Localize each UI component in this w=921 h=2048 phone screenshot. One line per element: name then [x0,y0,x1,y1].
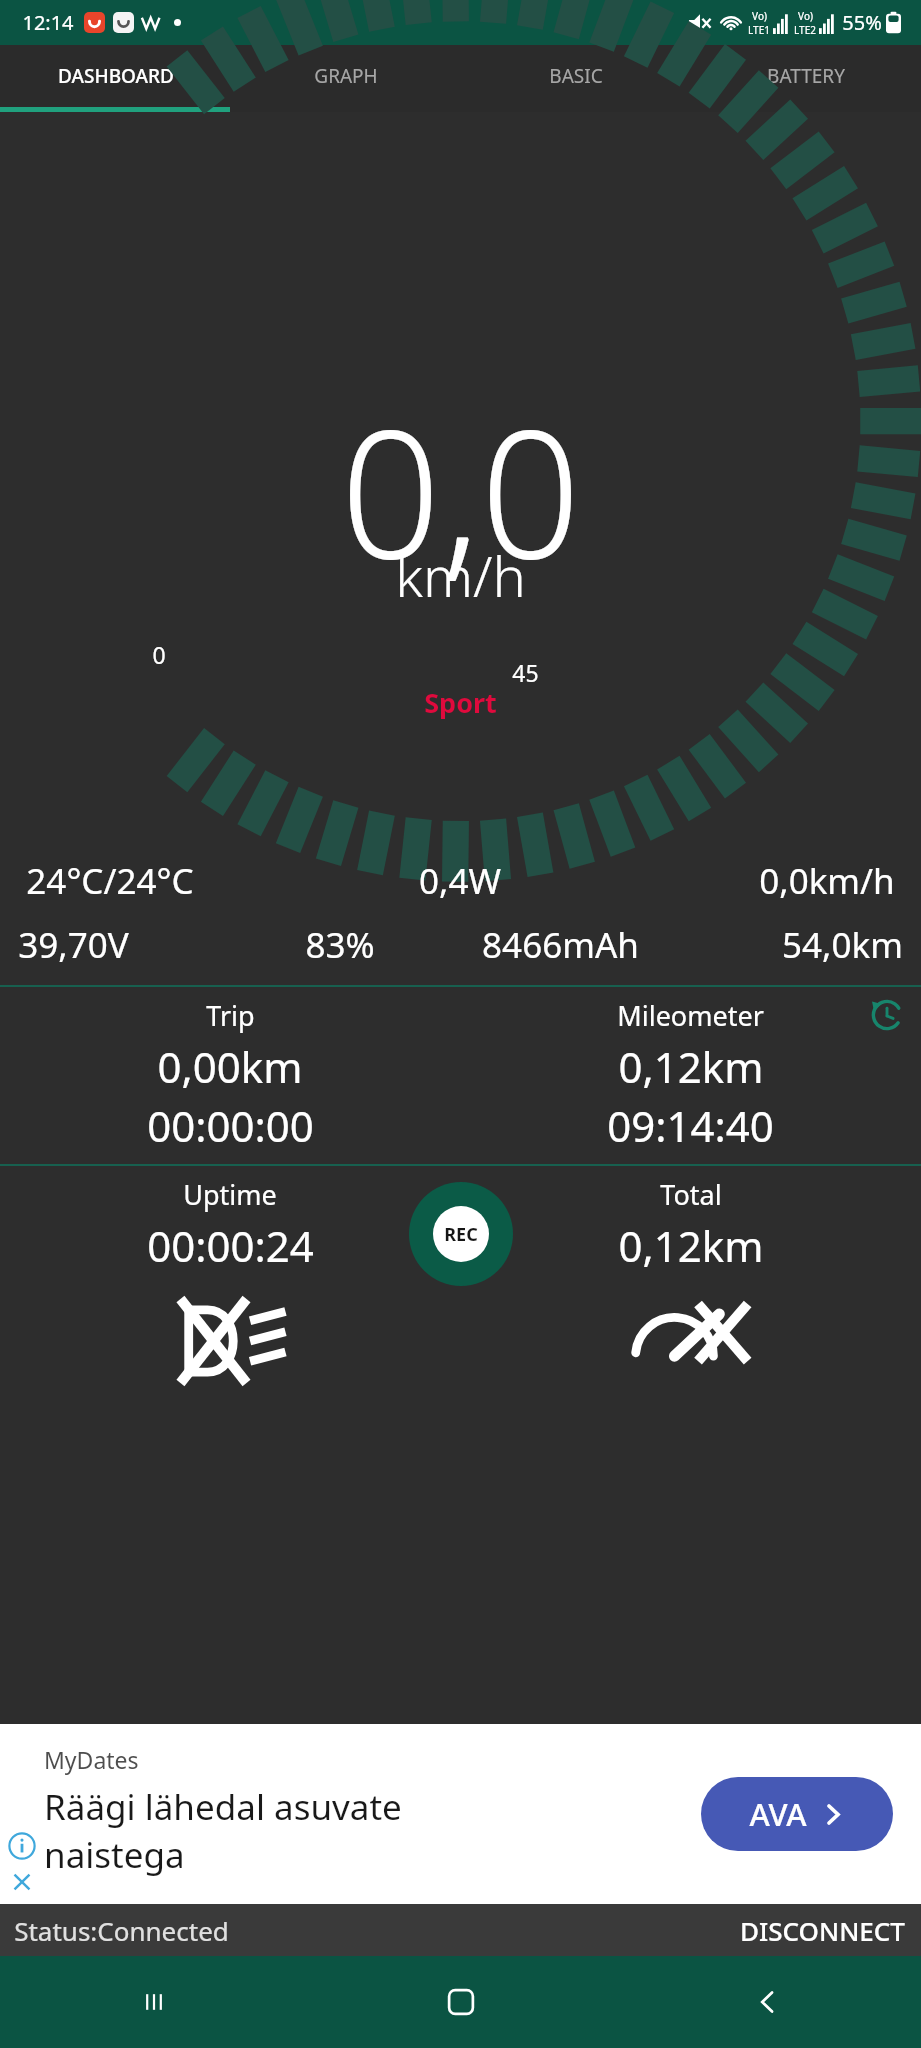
staticText: Status:Connected [14,1913,229,1948]
button[interactable]: Close ad [6,1866,38,1898]
staticText: BASIC [549,63,603,89]
staticText: 00:00:00 [147,1097,314,1154]
staticText: km/h [395,537,526,613]
staticText: Vo) [798,9,813,23]
staticText: 55% [842,9,882,36]
button[interactable]: DISCONNECT [724,1904,921,1956]
button[interactable]: Speed limit off [460,1282,921,1400]
staticText: LTE2 [794,23,816,37]
staticText: AVA [749,1793,807,1835]
staticText: 8466mAh [482,921,639,969]
staticText: 0,00km [157,1038,303,1095]
staticText: Mileometer [617,997,764,1034]
staticText: 39,70V [18,921,129,969]
button[interactable]: Record [409,1182,513,1286]
staticText: Vo) [752,9,767,23]
staticText: 00:00:24 [147,1217,314,1274]
staticText: MyDates [44,1744,139,1775]
staticText: Total [660,1176,722,1213]
staticText: 09:14:40 [607,1097,774,1154]
staticText: LTE1 [748,23,770,37]
staticText: Trip [206,997,255,1034]
button[interactable]: Back [614,1956,921,2048]
staticText: 0 [152,639,166,670]
staticText: 45 [512,657,539,688]
staticText: 0,12km [618,1038,764,1095]
button[interactable]: BATTERY [691,45,921,107]
staticText: Sport [424,684,497,721]
button[interactable]: Recents [0,1956,307,2048]
staticText: 83% [305,921,375,969]
staticText: GRAPH [314,63,378,89]
staticText: 24°C/24°C [26,857,194,905]
staticText: 0,0km/h [759,857,895,905]
button[interactable]: AVA [701,1777,893,1851]
button[interactable]: GRAPH [231,45,461,107]
staticText: Uptime [183,1176,277,1213]
button[interactable]: DASHBOARD [0,45,231,107]
staticText: 0,4W [419,857,501,905]
staticText: 0,12km [618,1217,764,1274]
button[interactable]: Home [307,1956,614,2048]
staticText: DASHBOARD [58,63,174,89]
button[interactable]: Headlight off [0,1282,460,1400]
staticText: naistega [44,1831,185,1879]
button[interactable]: History [865,993,909,1037]
staticText: 0,0 [340,370,581,610]
staticText: 54,0km [782,921,903,969]
button[interactable]: BASIC [461,45,691,107]
staticText: Räägi lähedal asuvate [44,1783,402,1831]
staticText: DISCONNECT [740,1913,905,1948]
staticText: REC [444,1222,478,1247]
staticText: 12:14 [22,9,74,36]
staticText: BATTERY [767,63,845,89]
